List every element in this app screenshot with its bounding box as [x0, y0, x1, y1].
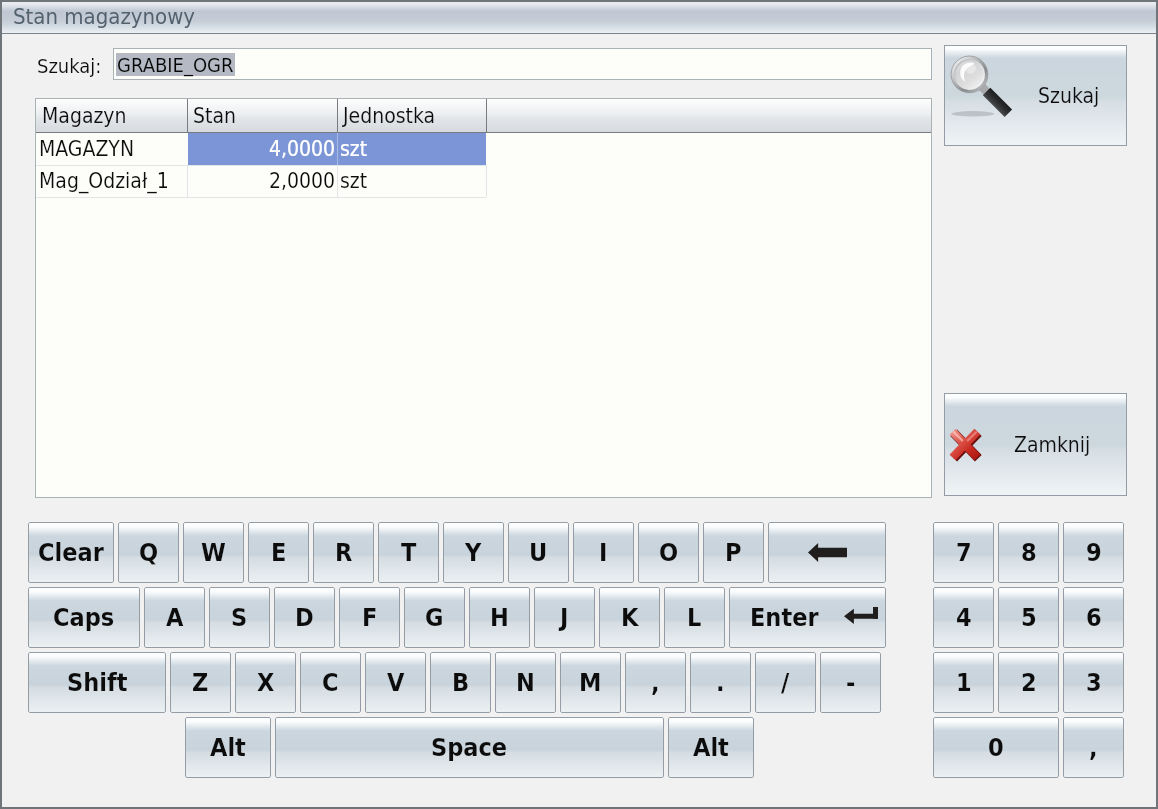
- staticText: C: [322, 668, 339, 697]
- staticText: .: [716, 668, 725, 697]
- staticText: Z: [192, 668, 209, 697]
- staticText: ,: [1089, 733, 1098, 762]
- button[interactable]: H: [469, 587, 530, 648]
- button[interactable]: GRABIE_OGR: [113, 48, 932, 80]
- button[interactable]: 2: [998, 652, 1059, 713]
- button[interactable]: 0: [933, 717, 1059, 778]
- button[interactable]: M: [560, 652, 621, 713]
- staticText: Jednostka: [343, 104, 436, 128]
- button[interactable]: F: [339, 587, 400, 648]
- button[interactable]: S: [209, 587, 270, 648]
- button[interactable]: /: [755, 652, 816, 713]
- staticText: Stan magazynowy: [13, 4, 196, 30]
- button[interactable]: K: [599, 587, 660, 648]
- staticText: 3: [1086, 668, 1102, 697]
- button[interactable]: Alt: [668, 717, 754, 778]
- button[interactable]: Shift: [28, 652, 166, 713]
- staticText: R: [335, 538, 353, 567]
- staticText: O: [659, 538, 679, 567]
- button[interactable]: Q: [118, 522, 179, 583]
- button[interactable]: -: [820, 652, 881, 713]
- button[interactable]: Backspace: [729, 587, 886, 648]
- button[interactable]: Space: [275, 717, 664, 778]
- button[interactable]: A: [144, 587, 205, 648]
- staticText: Szukaj:: [37, 54, 102, 77]
- button[interactable]: Z: [170, 652, 231, 713]
- staticText: 4: [956, 603, 972, 632]
- staticText: W: [201, 538, 226, 567]
- staticText: B: [452, 668, 470, 697]
- staticText: ,: [651, 668, 660, 697]
- button[interactable]: L: [664, 587, 725, 648]
- staticText: X: [257, 668, 275, 697]
- button[interactable]: U: [508, 522, 569, 583]
- button[interactable]: C: [300, 652, 361, 713]
- staticText: H: [490, 603, 509, 632]
- button[interactable]: 4: [933, 587, 994, 648]
- staticText: 7: [956, 538, 972, 567]
- staticText: Space: [431, 733, 508, 762]
- staticText: Q: [139, 538, 159, 567]
- button[interactable]: J: [534, 587, 595, 648]
- staticText: Shift: [67, 668, 128, 697]
- button[interactable]: B: [430, 652, 491, 713]
- button[interactable]: X: [235, 652, 296, 713]
- staticText: 2: [1021, 668, 1037, 697]
- button[interactable]: R: [313, 522, 374, 583]
- staticText: Caps: [53, 603, 115, 632]
- button[interactable]: Magazyn: [42, 99, 177, 132]
- button[interactable]: Jednostka: [343, 99, 478, 132]
- button[interactable]: 1: [933, 652, 994, 713]
- staticText: Zamknij: [1014, 433, 1091, 457]
- button[interactable]: Szukaj: [944, 45, 1127, 146]
- staticText: Mag_Odział_1: [39, 169, 169, 193]
- staticText: K: [621, 603, 639, 632]
- button[interactable]: O: [638, 522, 699, 583]
- button[interactable]: 7: [933, 522, 994, 583]
- button[interactable]: T: [378, 522, 439, 583]
- staticText: P: [725, 538, 742, 567]
- button[interactable]: .: [690, 652, 751, 713]
- staticText: 0: [988, 733, 1004, 762]
- button[interactable]: ,: [1063, 717, 1124, 778]
- staticText: Stan: [193, 104, 236, 128]
- button[interactable]: 8: [998, 522, 1059, 583]
- button[interactable]: G: [404, 587, 465, 648]
- button[interactable]: Stan: [193, 99, 328, 132]
- button[interactable]: 6: [1063, 587, 1124, 648]
- button[interactable]: Backspace: [768, 522, 886, 583]
- button[interactable]: Clear: [28, 522, 114, 583]
- staticText: V: [387, 668, 405, 697]
- staticText: L: [687, 603, 702, 632]
- button[interactable]: P: [703, 522, 764, 583]
- staticText: M: [579, 668, 602, 697]
- button[interactable]: I: [573, 522, 634, 583]
- staticText: Magazyn: [42, 104, 127, 128]
- button[interactable]: V: [365, 652, 426, 713]
- staticText: Szukaj: [1038, 84, 1100, 108]
- staticText: Alt: [693, 733, 729, 762]
- button[interactable]: 3: [1063, 652, 1124, 713]
- staticText: Alt: [210, 733, 246, 762]
- button[interactable]: W: [183, 522, 244, 583]
- button[interactable]: Zamknij: [944, 393, 1127, 496]
- staticText: G: [425, 603, 444, 632]
- staticText: J: [560, 603, 569, 632]
- button[interactable]: 9: [1063, 522, 1124, 583]
- button[interactable]: Y: [443, 522, 504, 583]
- button[interactable]: 5: [998, 587, 1059, 648]
- staticText: MAGAZYN: [39, 137, 135, 161]
- staticText: szt: [340, 169, 368, 193]
- staticText: GRABIE_OGR: [117, 53, 234, 76]
- staticText: I: [599, 538, 608, 567]
- button[interactable]: D: [274, 587, 335, 648]
- button[interactable]: E: [248, 522, 309, 583]
- button[interactable]: Alt: [185, 717, 271, 778]
- staticText: 5: [1021, 603, 1037, 632]
- staticText: U: [529, 538, 548, 567]
- button[interactable]: Caps: [28, 587, 140, 648]
- button[interactable]: ,: [625, 652, 686, 713]
- staticText: 4,0000: [269, 137, 336, 161]
- staticText: Clear: [38, 538, 104, 567]
- button[interactable]: N: [495, 652, 556, 713]
